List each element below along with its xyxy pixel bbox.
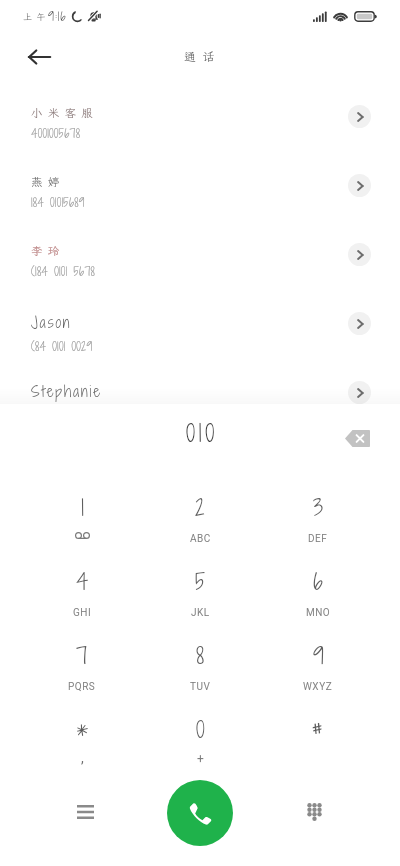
staticText: 小 米 客 服 xyxy=(31,105,94,120)
staticText: (84 0101 0029 xyxy=(31,338,93,355)
staticText: * xyxy=(76,713,89,745)
button[interactable]: Stephanie xyxy=(0,357,400,426)
staticText: 李 玲 xyxy=(31,243,60,258)
staticText: TUV xyxy=(190,681,211,693)
button[interactable]: Jason xyxy=(0,288,400,357)
button[interactable]: 2 xyxy=(141,471,259,545)
button[interactable]: * xyxy=(23,693,141,767)
staticText: 9:16 xyxy=(48,8,67,25)
button[interactable]: Call xyxy=(167,780,233,846)
button[interactable]: Open contact xyxy=(348,312,371,335)
staticText: 4001005678 xyxy=(31,125,81,142)
staticText: (184 0101 5678 xyxy=(31,263,96,280)
button[interactable]: # xyxy=(259,693,377,767)
button[interactable]: 1 xyxy=(23,471,141,545)
staticText: 2 xyxy=(195,491,205,523)
button[interactable]: Open contact xyxy=(348,105,371,128)
staticText: 燕 婷 xyxy=(31,174,60,189)
button[interactable]: 8 xyxy=(141,619,259,693)
staticText: 7 xyxy=(76,639,88,671)
staticText: 6 xyxy=(313,565,323,597)
button[interactable]: Open contact xyxy=(348,243,371,266)
button[interactable]: 4 xyxy=(23,545,141,619)
button[interactable]: Backspace xyxy=(338,419,376,457)
staticText: 通 话 xyxy=(184,49,216,65)
staticText: Jason xyxy=(31,312,72,333)
button[interactable]: Open contact xyxy=(348,381,371,404)
button[interactable]: 9 xyxy=(259,619,377,693)
button[interactable]: Dialpad xyxy=(292,790,336,834)
button[interactable]: 李 玲 xyxy=(0,219,400,288)
button[interactable]: 7 xyxy=(23,619,141,693)
staticText: MNO xyxy=(306,607,331,619)
staticText: PQRS xyxy=(68,681,96,693)
staticText: Stephanie xyxy=(31,381,102,402)
button[interactable]: Menu xyxy=(63,790,107,834)
staticText: 上 午 xyxy=(23,11,46,23)
staticText: 8 xyxy=(196,639,204,671)
staticText: 9 xyxy=(313,639,324,671)
button[interactable]: 0 xyxy=(141,693,259,767)
staticText: WXYZ xyxy=(303,681,333,693)
staticText: 184 01015689 xyxy=(31,194,85,211)
button[interactable]: Back xyxy=(17,35,61,79)
staticText: # xyxy=(311,713,325,745)
staticText: 010 xyxy=(186,416,218,449)
staticText: DEF xyxy=(308,533,328,545)
staticText: 5 xyxy=(195,565,206,597)
staticText: 4 xyxy=(76,565,89,597)
staticText: 1 xyxy=(81,491,84,523)
staticText: , xyxy=(81,750,84,766)
staticText: ABC xyxy=(190,533,211,545)
staticText: 0 xyxy=(196,713,205,745)
button[interactable]: 小 米 客 服 xyxy=(0,81,400,150)
button[interactable]: Open contact xyxy=(348,174,371,197)
staticText: JKL xyxy=(191,607,210,619)
button[interactable]: 燕 婷 xyxy=(0,150,400,219)
button[interactable]: 5 xyxy=(141,545,259,619)
button[interactable]: 6 xyxy=(259,545,377,619)
staticText: GHI xyxy=(73,607,92,619)
staticText: 3 xyxy=(313,491,324,523)
staticText: + xyxy=(197,752,204,766)
button[interactable]: 3 xyxy=(259,471,377,545)
